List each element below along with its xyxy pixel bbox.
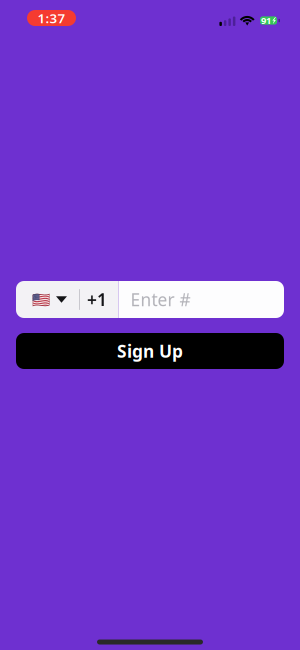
button[interactable]: Select country code, United States, plus… — [16, 281, 118, 318]
button[interactable]: Sign Up — [16, 333, 284, 369]
staticText: Sign Up — [117, 339, 183, 362]
staticText: 1:37 — [37, 9, 65, 27]
button[interactable]: Phone number — [118, 281, 284, 318]
staticText: 91 — [261, 14, 271, 27]
staticText: +1 — [87, 288, 107, 311]
staticText: Enter # — [130, 288, 190, 311]
staticText: 🇺🇸 — [31, 291, 49, 308]
